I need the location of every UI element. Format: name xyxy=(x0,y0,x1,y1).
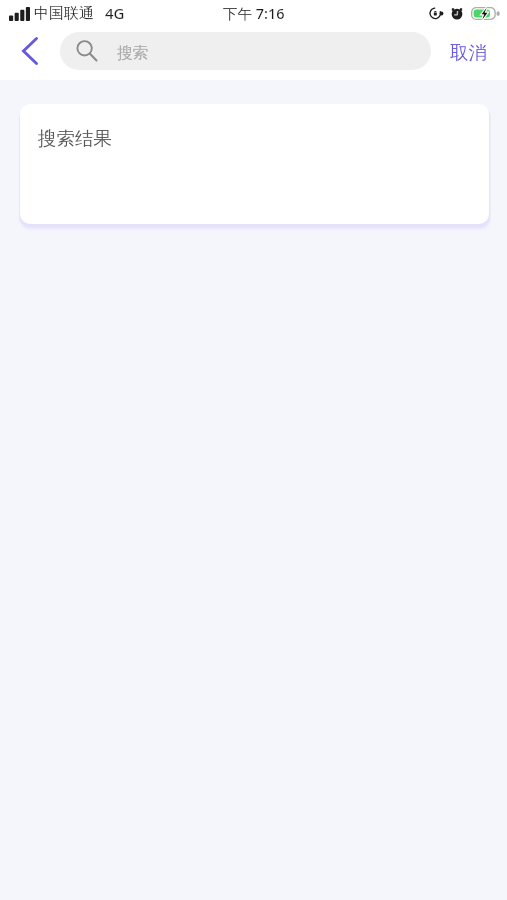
staticText: 搜索 xyxy=(117,43,148,63)
staticText: 下午 7:16 xyxy=(223,3,285,23)
staticText: 搜索结果 xyxy=(38,127,112,150)
button[interactable]: 搜索结果 xyxy=(20,104,489,224)
button[interactable]: 取消 xyxy=(440,32,497,70)
button[interactable]: 搜索 xyxy=(60,32,431,70)
staticText: 4G xyxy=(105,3,125,23)
button[interactable]: 返回 xyxy=(11,32,49,70)
staticText: 取消 xyxy=(450,41,487,64)
staticText: 中国联通 xyxy=(34,4,94,23)
